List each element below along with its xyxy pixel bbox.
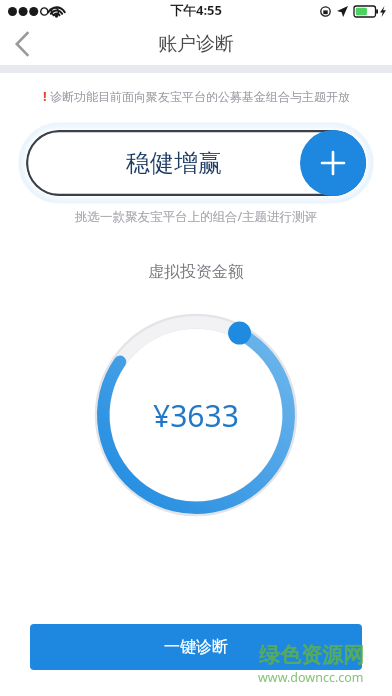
staticText: www.downcc.com [258,669,364,686]
button[interactable]: Add portfolio [300,130,366,196]
staticText: 下午4:55 [170,1,222,19]
staticText: ! [43,87,47,105]
staticText: 账户诊断 [158,32,234,56]
staticText: 虚拟投资金额 [0,262,392,282]
button[interactable]: 稳健增赢 [26,130,366,196]
staticText: 稳健增赢 [126,148,222,178]
staticText: 一键诊断 [164,637,228,657]
staticText: 挑选一款聚友宝平台上的组合/主题进行测评 [0,208,392,225]
button[interactable]: Back [0,22,44,65]
staticText: ¥3633 [153,395,239,436]
button[interactable]: 一键诊断 [30,624,362,670]
staticText: 绿色资源网 [259,642,364,668]
staticText: 诊断功能目前面向聚友宝平台的公募基金组合与主题开放 [50,89,350,104]
